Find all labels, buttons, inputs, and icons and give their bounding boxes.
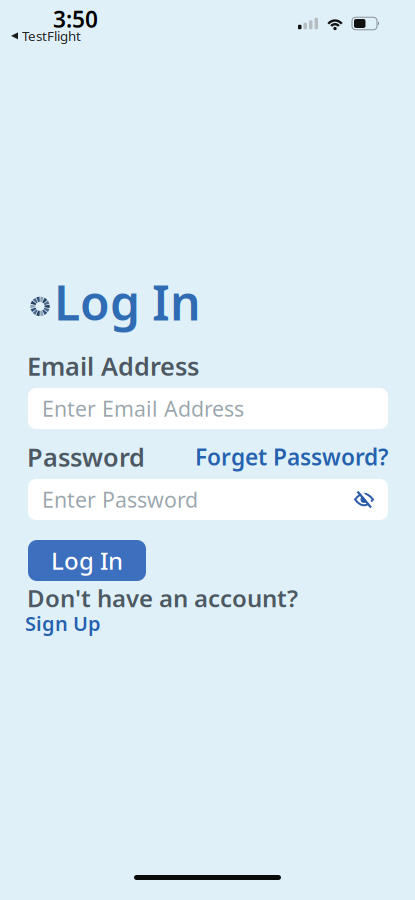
- staticText: Enter Password: [42, 485, 198, 514]
- staticText: Password: [27, 440, 145, 474]
- staticText: TestFlight: [22, 27, 81, 45]
- staticText: Forget Password?: [195, 442, 388, 472]
- staticText: Enter Email Address: [42, 394, 244, 423]
- staticText: Email Address: [27, 349, 199, 383]
- button[interactable]: Log In: [28, 540, 146, 581]
- button[interactable]: Enter Password: [28, 479, 388, 520]
- staticText: Log In: [54, 270, 201, 334]
- staticText: 3:50: [53, 4, 98, 34]
- staticText: Don't have an account?: [27, 582, 298, 614]
- staticText: Log In: [51, 545, 123, 576]
- staticText: Sign Up: [25, 610, 101, 637]
- button[interactable]: Sign Up: [25, 610, 101, 637]
- button[interactable]: Enter Email Address: [28, 388, 388, 429]
- button[interactable]: Forget Password?: [195, 442, 388, 472]
